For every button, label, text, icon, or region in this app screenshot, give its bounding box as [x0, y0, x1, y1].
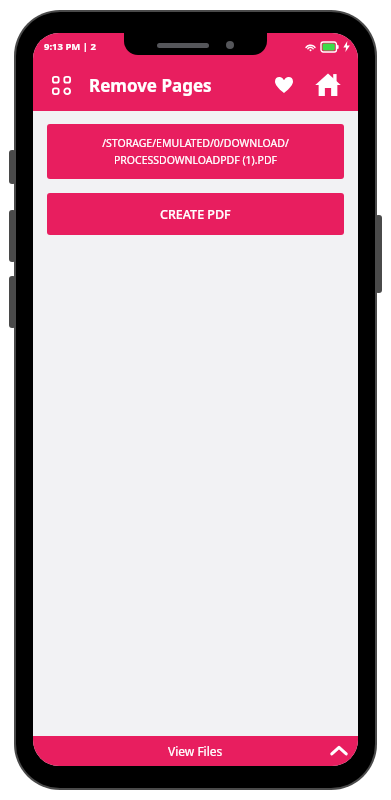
button[interactable]: Home: [308, 65, 348, 105]
button[interactable]: Menu: [43, 67, 79, 103]
button[interactable]: /STORAGE/EMULATED/0/DOWNLOAD/ PROCESSDOW…: [47, 124, 344, 179]
staticText: Remove Pages: [89, 74, 212, 97]
staticText: View Files: [168, 743, 223, 759]
staticText: 9:13 PM | 2: [44, 40, 96, 53]
button[interactable]: View Files: [33, 736, 358, 766]
button[interactable]: CREATE PDF: [47, 193, 344, 235]
button[interactable]: Favorite: [266, 67, 302, 103]
staticText: CREATE PDF: [160, 206, 231, 223]
staticText: /STORAGE/EMULATED/0/DOWNLOAD/ PROCESSDOW…: [102, 136, 289, 167]
button[interactable]: Expand: [326, 738, 352, 764]
